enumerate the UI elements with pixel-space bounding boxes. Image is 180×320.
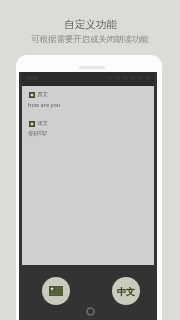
staticText: 可根据需要开启或关闭朗读功能 [31,34,149,45]
button[interactable]: English source language [42,277,70,305]
staticText: 中文 [117,286,135,297]
button[interactable]: Chinese target language [112,277,140,305]
staticText: 自定义功能 [64,18,117,31]
staticText: how are you [28,101,61,109]
staticText: 原文 [37,91,49,98]
staticText: 译文 [37,120,49,127]
button[interactable]: Home [84,305,97,318]
staticText: 你好吗? [28,129,48,137]
